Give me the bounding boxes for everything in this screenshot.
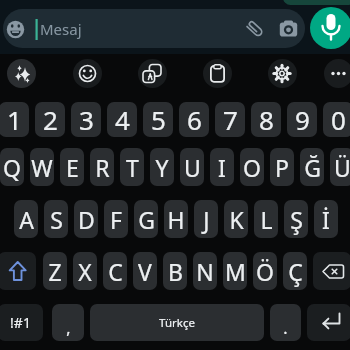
button[interactable]: Ğ xyxy=(300,148,324,186)
button[interactable]: S xyxy=(44,200,68,238)
staticText: T xyxy=(126,152,139,183)
staticText: Ş xyxy=(290,204,303,235)
button[interactable]: G xyxy=(134,200,158,238)
button[interactable]: Y xyxy=(150,148,174,186)
staticText: !#1 xyxy=(10,313,31,332)
button[interactable]: P xyxy=(270,148,294,186)
button[interactable]: N xyxy=(193,252,217,290)
button[interactable]: D xyxy=(74,200,98,238)
button[interactable]: Ç xyxy=(283,252,307,290)
button[interactable]: W xyxy=(30,148,54,186)
button[interactable]: 6 xyxy=(179,102,209,137)
button[interactable] xyxy=(313,252,350,290)
button[interactable] xyxy=(324,59,350,88)
button[interactable]: L xyxy=(254,200,278,238)
button[interactable]: Z xyxy=(43,252,67,290)
staticText: Ö xyxy=(256,256,274,287)
staticText: Y xyxy=(155,152,169,183)
button[interactable] xyxy=(7,59,36,88)
button[interactable]: 2 xyxy=(35,102,65,137)
staticText: 7 xyxy=(223,102,238,137)
button[interactable]: Ş xyxy=(284,200,308,238)
button[interactable]: T xyxy=(120,148,144,186)
button[interactable]: Q xyxy=(0,148,24,186)
button[interactable]: Ö xyxy=(253,252,277,290)
staticText: P xyxy=(275,152,289,183)
staticText: O xyxy=(243,152,261,183)
button[interactable] xyxy=(307,304,350,341)
staticText: Z xyxy=(48,256,62,287)
staticText: G xyxy=(138,204,155,235)
staticText: D xyxy=(78,204,95,235)
staticText: 3 xyxy=(79,102,94,137)
button[interactable]: C xyxy=(103,252,127,290)
staticText: 0 xyxy=(331,102,346,137)
staticText: A xyxy=(19,204,34,235)
button[interactable]: X xyxy=(73,252,97,290)
staticText: 8 xyxy=(259,102,274,137)
staticText: X xyxy=(78,256,92,287)
button[interactable]: . xyxy=(270,304,301,341)
button[interactable] xyxy=(203,59,232,88)
button[interactable] xyxy=(138,59,167,88)
button[interactable] xyxy=(268,59,297,88)
staticText: . xyxy=(283,317,288,339)
staticText: İ xyxy=(322,204,330,235)
button[interactable]: 4 xyxy=(107,102,137,137)
button[interactable]: U xyxy=(180,148,204,186)
button[interactable]: I xyxy=(210,148,234,186)
button[interactable]: V xyxy=(133,252,157,290)
staticText: 4 xyxy=(115,102,130,137)
button[interactable]: Türkçe xyxy=(90,304,264,341)
staticText: Q xyxy=(3,152,21,183)
button[interactable]: 7 xyxy=(215,102,245,137)
button[interactable] xyxy=(310,7,350,49)
button[interactable]: 8 xyxy=(251,102,281,137)
staticText: U xyxy=(184,152,201,183)
button[interactable]: F xyxy=(104,200,128,238)
staticText: V xyxy=(138,256,152,287)
button[interactable]: Mesaj xyxy=(3,9,305,48)
staticText: K xyxy=(229,204,244,235)
staticText: Ğ xyxy=(304,152,321,183)
button[interactable]: Ü xyxy=(330,148,350,186)
staticText: R xyxy=(95,152,110,183)
staticText: S xyxy=(50,204,63,235)
button[interactable]: 9 xyxy=(287,102,317,137)
button[interactable]: E xyxy=(60,148,84,186)
button[interactable]: H xyxy=(164,200,188,238)
button[interactable]: O xyxy=(240,148,264,186)
button[interactable]: 5 xyxy=(143,102,173,137)
staticText: 5 xyxy=(151,102,166,137)
button[interactable]: 1 xyxy=(0,102,29,137)
button[interactable]: 0 xyxy=(323,102,350,137)
button[interactable]: !#1 xyxy=(0,304,43,341)
button[interactable] xyxy=(0,252,36,290)
staticText: I xyxy=(218,152,226,183)
staticText: N xyxy=(196,256,214,287)
button[interactable]: , xyxy=(52,304,84,341)
button[interactable]: R xyxy=(90,148,114,186)
staticText: , xyxy=(66,317,71,339)
button[interactable] xyxy=(73,59,102,88)
staticText: L xyxy=(260,204,273,235)
staticText: Türkçe xyxy=(159,315,195,331)
button[interactable]: J xyxy=(194,200,218,238)
staticText: M xyxy=(225,256,246,287)
staticText: J xyxy=(203,204,210,235)
button[interactable]: İ xyxy=(314,200,338,238)
staticText: Mesaj xyxy=(40,19,82,39)
button[interactable]: 3 xyxy=(71,102,101,137)
button[interactable]: K xyxy=(224,200,248,238)
staticText: Ç xyxy=(288,256,303,287)
button[interactable]: B xyxy=(163,252,187,290)
staticText: H xyxy=(167,204,185,235)
button[interactable]: A xyxy=(14,200,38,238)
staticText: C xyxy=(108,256,123,287)
button[interactable]: M xyxy=(223,252,247,290)
staticText: F xyxy=(110,204,122,235)
staticText: B xyxy=(168,256,183,287)
staticText: 2 xyxy=(43,102,58,137)
staticText: 9 xyxy=(295,102,310,137)
staticText: Ü xyxy=(334,152,350,183)
